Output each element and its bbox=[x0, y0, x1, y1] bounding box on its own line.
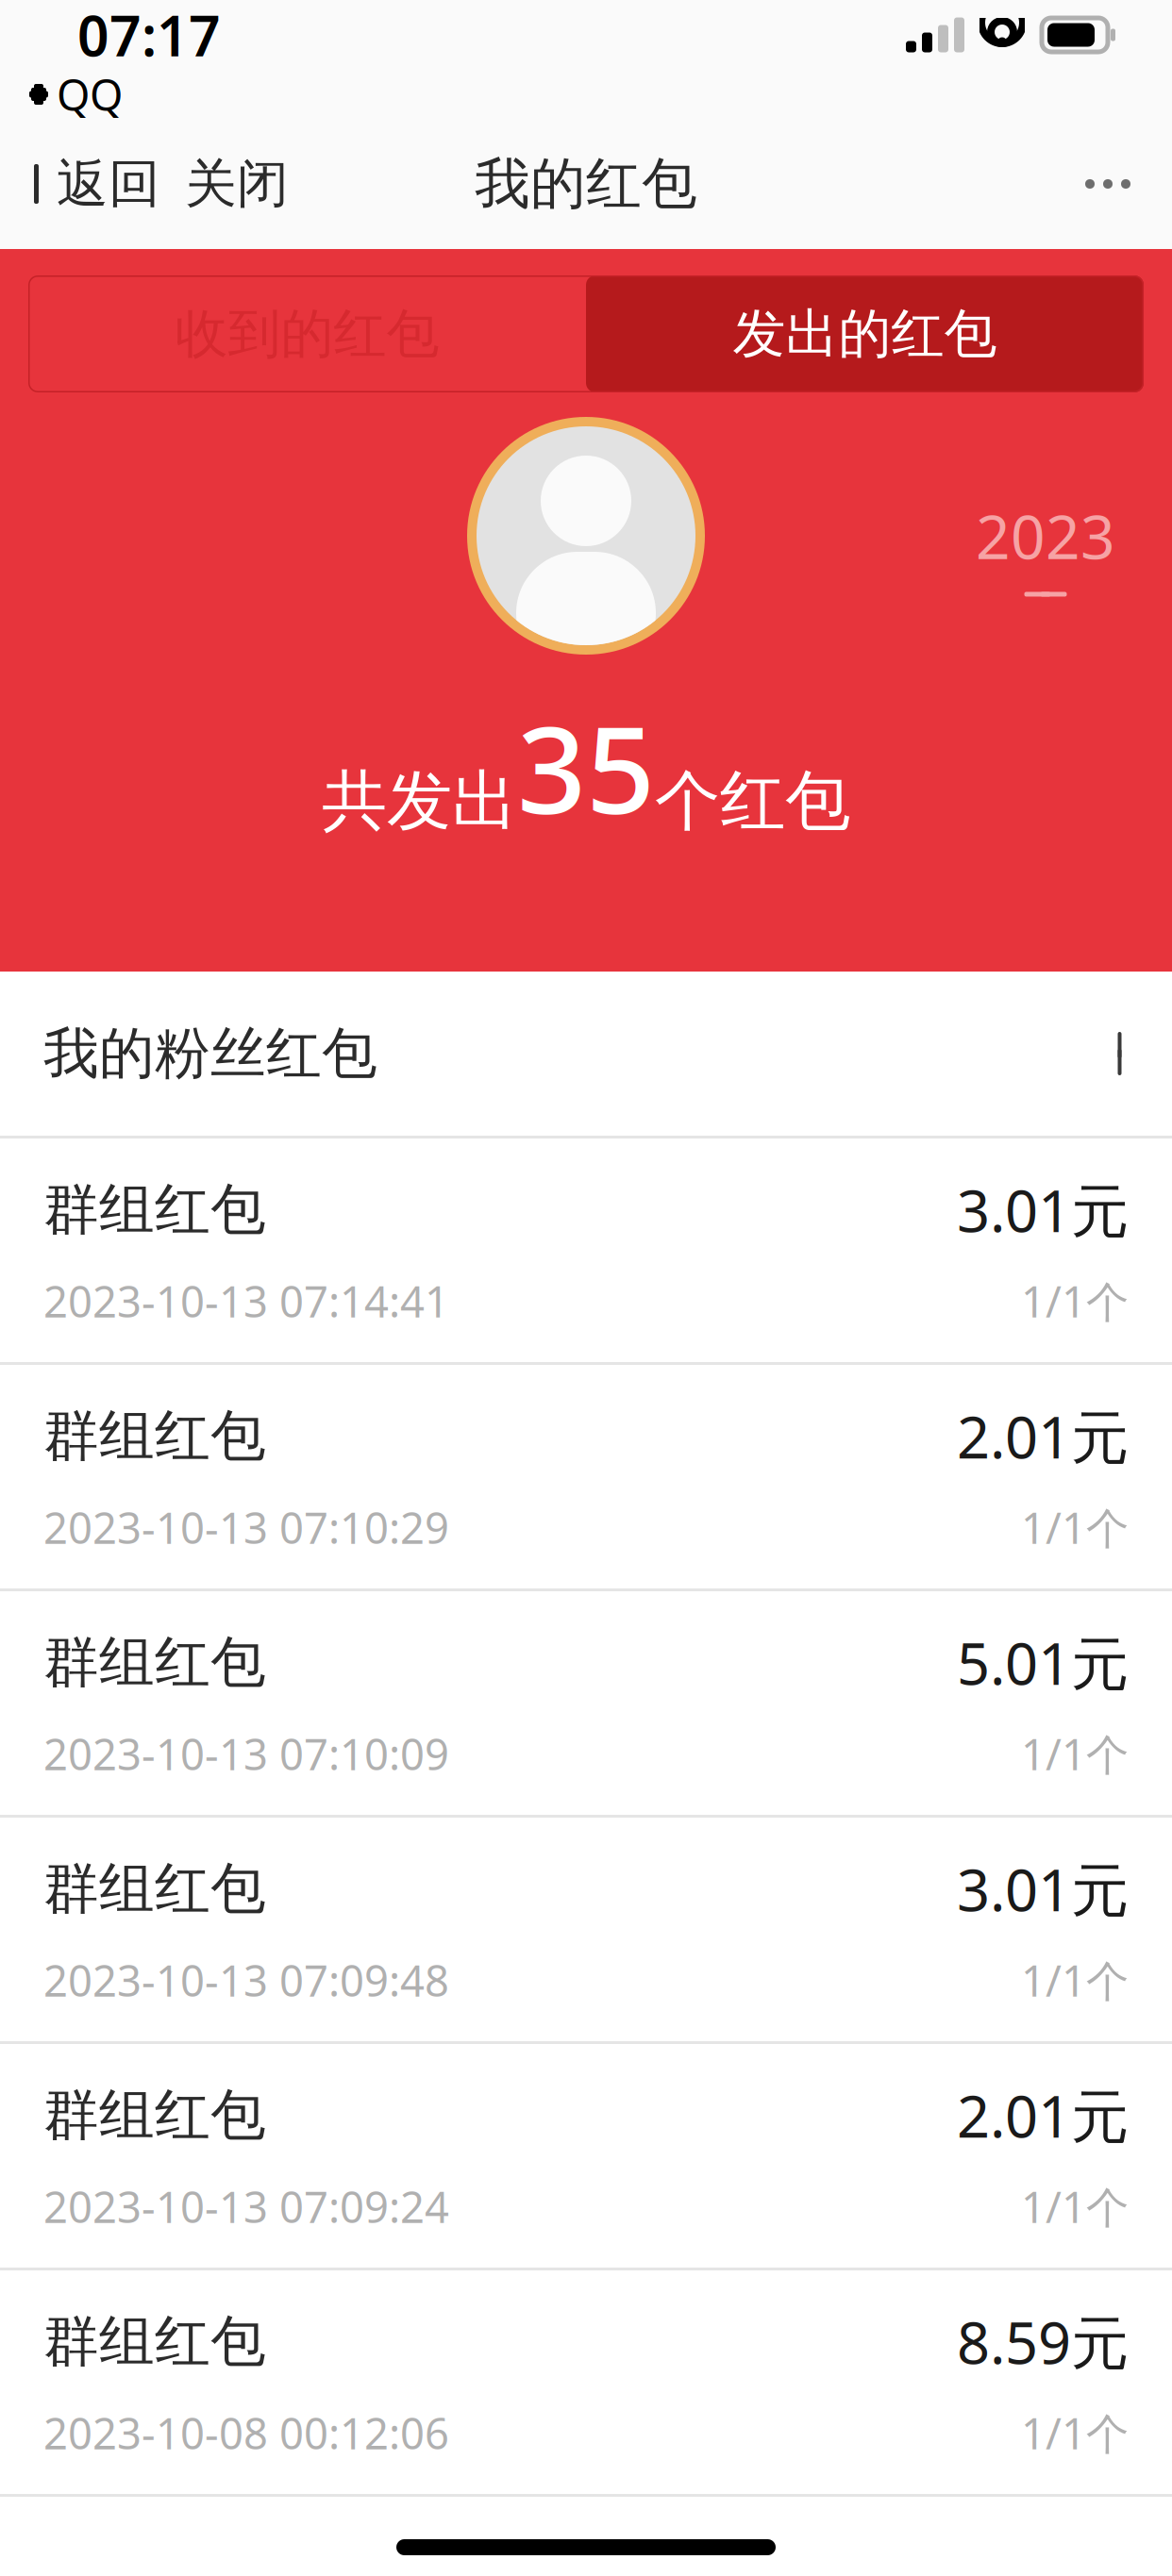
staticText: 发出的红包 bbox=[733, 301, 997, 366]
button[interactable]: 关闭 bbox=[160, 135, 302, 233]
staticText: 收到的红包 bbox=[175, 301, 439, 366]
staticText: 8.59元 bbox=[957, 2303, 1129, 2380]
button[interactable]: 更多 bbox=[1044, 153, 1172, 215]
staticText: 1/1个 bbox=[1021, 1725, 1129, 1782]
button[interactable]: 群组红包 bbox=[0, 2270, 1172, 2494]
staticText: 1/1个 bbox=[1021, 2178, 1129, 2235]
button[interactable]: 群组红包 bbox=[0, 1138, 1172, 1362]
staticText: 群组红包 bbox=[43, 1855, 266, 1923]
staticText: 我的红包 bbox=[475, 150, 697, 218]
staticText: 5.01元 bbox=[957, 1624, 1129, 1701]
button[interactable]: 返回 bbox=[0, 135, 160, 233]
staticText: 1/1个 bbox=[1021, 1273, 1129, 1329]
staticText: 群组红包 bbox=[43, 1176, 266, 1244]
staticText: 1/1个 bbox=[1021, 1499, 1129, 1556]
staticText: 群组红包 bbox=[43, 2308, 266, 2376]
staticText: 个红包 bbox=[655, 761, 850, 841]
staticText: 群组红包 bbox=[43, 1402, 266, 1470]
staticText: 35 bbox=[517, 687, 655, 847]
staticText: 2023-10-13 07:09:24 bbox=[43, 2178, 449, 2235]
staticText: 2023-10-13 07:10:09 bbox=[43, 1725, 449, 1782]
staticText: 1/1个 bbox=[1021, 2404, 1129, 2461]
staticText: 群组红包 bbox=[43, 1628, 266, 1696]
staticText: 2023-10-13 07:09:48 bbox=[43, 1952, 449, 2008]
staticText: QQ bbox=[57, 66, 123, 123]
button[interactable]: 群组红包 bbox=[0, 1365, 1172, 1588]
staticText: 2.01元 bbox=[957, 2077, 1129, 2154]
staticText: 3.01元 bbox=[957, 1850, 1129, 1927]
button[interactable]: 群组红包 bbox=[0, 1591, 1172, 1815]
button[interactable]: 群组红包 bbox=[0, 2044, 1172, 2268]
button[interactable]: 群组红包 bbox=[0, 1818, 1172, 2041]
staticText: 共发出 bbox=[322, 761, 517, 841]
staticText: 2023 bbox=[976, 496, 1115, 576]
staticText: 我的粉丝红包 bbox=[43, 1020, 377, 1088]
staticText: 关闭 bbox=[185, 152, 289, 216]
staticText: 07:17 bbox=[77, 0, 221, 72]
staticText: 群组红包 bbox=[43, 2081, 266, 2149]
staticText: 2023-10-13 07:10:29 bbox=[43, 1499, 449, 1556]
staticText: 2023-10-13 07:14:41 bbox=[43, 1273, 449, 1329]
staticText: 1/1个 bbox=[1021, 1952, 1129, 2008]
staticText: 3.01元 bbox=[957, 1171, 1129, 1248]
button[interactable]: 收到的红包 bbox=[28, 275, 586, 392]
staticText: 2023-10-08 00:12:06 bbox=[43, 2404, 449, 2461]
button[interactable]: 2023 bbox=[953, 486, 1138, 621]
button[interactable]: 我的粉丝红包 bbox=[0, 972, 1172, 1136]
button[interactable]: QQ bbox=[0, 62, 136, 126]
button[interactable]: 发出的红包 bbox=[586, 275, 1144, 392]
staticText: 2.01元 bbox=[957, 1398, 1129, 1474]
staticText: 返回 bbox=[57, 152, 160, 216]
